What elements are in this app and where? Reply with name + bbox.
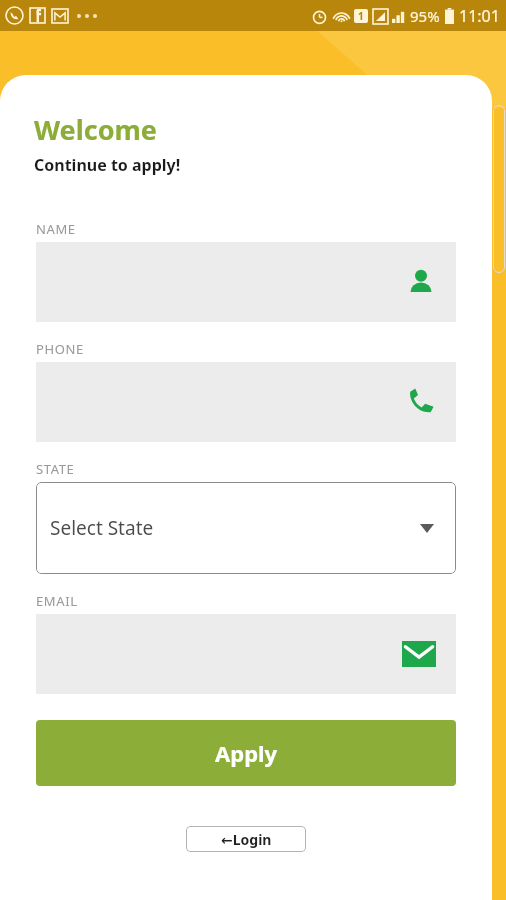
button[interactable]: Email (36, 614, 456, 694)
staticText: EMAIL (36, 592, 78, 610)
staticText: PHONE (36, 340, 84, 358)
button[interactable]: Phone (36, 362, 456, 442)
staticText: STATE (36, 460, 75, 478)
button[interactable]: Apply (36, 720, 456, 786)
staticText: 95% (410, 6, 440, 26)
button[interactable]: ←Login (186, 826, 306, 852)
staticText: Welcome (34, 111, 157, 148)
staticText: ←Login (221, 830, 272, 849)
staticText: 1 (358, 9, 364, 23)
staticText: Apply (215, 738, 278, 768)
other: Phone (406, 387, 436, 417)
other: Email (402, 641, 436, 667)
button[interactable]: Name (36, 242, 456, 322)
other: Name (406, 267, 436, 297)
staticText: Select State (50, 515, 154, 541)
staticText: Application (185, 0, 322, 18)
staticText: NAME (36, 220, 76, 238)
button[interactable]: Select State (36, 482, 456, 574)
staticText: 11:01 (459, 5, 500, 27)
staticText: Continue to apply! (34, 154, 181, 176)
